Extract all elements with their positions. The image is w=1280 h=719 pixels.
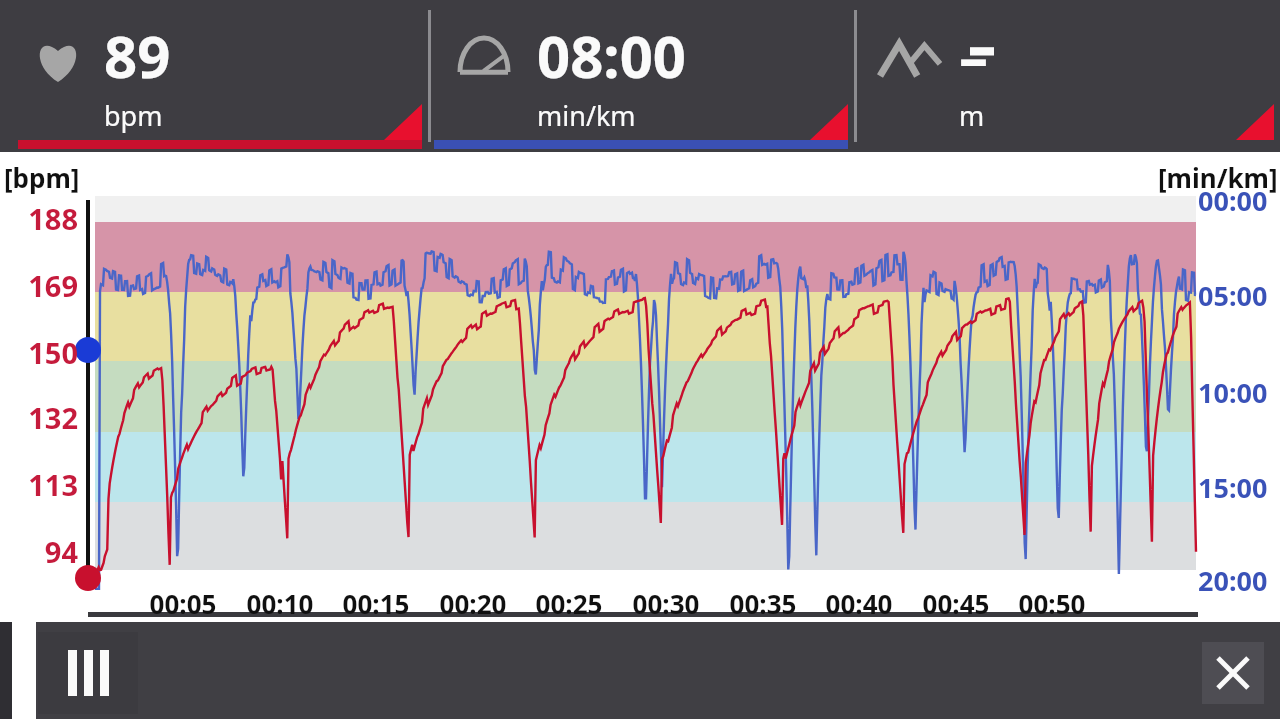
staticText: 94 xyxy=(10,532,78,571)
staticText: 00:10 xyxy=(232,586,328,621)
staticText: 00:15 xyxy=(328,586,424,621)
staticText: 00:35 xyxy=(715,586,811,621)
staticText: 20:00 xyxy=(1198,562,1280,599)
staticText: 08:00 xyxy=(537,16,687,95)
button[interactable]: Close xyxy=(1202,642,1264,704)
staticText: 15:00 xyxy=(1198,469,1280,506)
staticText: min/km xyxy=(537,97,636,134)
staticText: 113 xyxy=(10,465,78,504)
staticText: 00:25 xyxy=(521,586,617,621)
button[interactable]: 08:00 xyxy=(428,0,854,152)
staticText: 169 xyxy=(10,266,78,305)
staticText: 00:20 xyxy=(425,586,521,621)
staticText: 00:50 xyxy=(1004,586,1100,621)
button[interactable]: Pause xyxy=(38,632,138,714)
staticText: 00:00 xyxy=(1198,182,1280,219)
staticText: 05:00 xyxy=(1198,277,1280,314)
staticText: 132 xyxy=(10,398,78,437)
staticText: [bpm] xyxy=(4,160,80,195)
staticText: 150 xyxy=(10,333,78,372)
staticText: 10:00 xyxy=(1198,374,1280,411)
button[interactable]: – xyxy=(854,0,1280,152)
staticText: – xyxy=(959,16,989,95)
staticText: 188 xyxy=(10,199,78,238)
staticText: bpm xyxy=(104,97,163,134)
staticText: 00:45 xyxy=(908,586,1004,621)
staticText: [min/km] xyxy=(1158,160,1278,195)
button[interactable]: 89 xyxy=(0,0,428,152)
staticText: m xyxy=(959,97,985,134)
staticText: 00:05 xyxy=(135,586,231,621)
staticText: 00:30 xyxy=(618,586,714,621)
staticText: 89 xyxy=(104,16,171,95)
staticText: 00:40 xyxy=(811,586,907,621)
